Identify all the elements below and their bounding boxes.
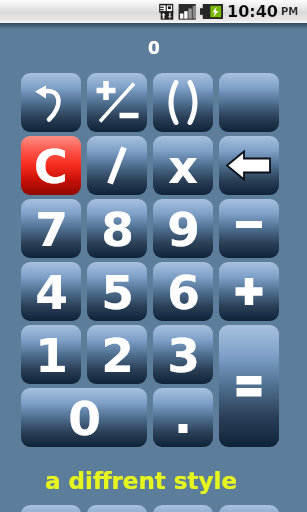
- button[interactable]: More: [219, 505, 279, 512]
- button[interactable]: 8: [87, 199, 147, 258]
- staticText: 8: [101, 202, 134, 257]
- button[interactable]: Plus minus: [87, 73, 147, 132]
- staticText: 1: [35, 328, 68, 383]
- staticText: x: [168, 140, 198, 194]
- button[interactable]: More: [21, 505, 81, 512]
- button[interactable]: 5: [87, 262, 147, 321]
- staticText: 4: [35, 265, 68, 320]
- staticText: C: [34, 140, 68, 194]
- staticText: 9: [167, 202, 200, 257]
- button[interactable]: Backspace: [219, 136, 279, 195]
- button[interactable]: 3: [153, 325, 213, 384]
- staticText: a diffrent style: [45, 468, 237, 495]
- staticText: 10:40: [227, 2, 278, 21]
- button[interactable]: Undo: [21, 73, 81, 132]
- button[interactable]: More: [153, 505, 213, 512]
- button[interactable]: Decimal point: [153, 388, 213, 447]
- button[interactable]: 9: [153, 199, 213, 258]
- button[interactable]: Equals: [219, 325, 279, 447]
- button[interactable]: Divide: [87, 136, 147, 195]
- staticText: 0: [148, 38, 160, 58]
- staticText: 3: [167, 328, 200, 383]
- button[interactable]: 7: [21, 199, 81, 258]
- button[interactable]: Parentheses: [153, 73, 213, 132]
- staticText: 2: [101, 328, 134, 383]
- button[interactable]: C: [21, 136, 81, 195]
- button[interactable]: 4: [21, 262, 81, 321]
- staticText: PM: [281, 6, 299, 18]
- staticText: 7: [35, 202, 68, 257]
- staticText: 6: [167, 265, 200, 320]
- button[interactable]: Plus: [219, 262, 279, 321]
- button[interactable]: 0: [21, 388, 147, 447]
- button[interactable]: More: [87, 505, 147, 512]
- button[interactable]: 1: [21, 325, 81, 384]
- staticText: 0: [68, 391, 101, 446]
- button[interactable]: 2: [87, 325, 147, 384]
- button[interactable]: Minus: [219, 199, 279, 258]
- button[interactable]: Blank: [219, 73, 279, 132]
- button[interactable]: x: [153, 136, 213, 195]
- button[interactable]: 6: [153, 262, 213, 321]
- staticText: 5: [101, 265, 134, 320]
